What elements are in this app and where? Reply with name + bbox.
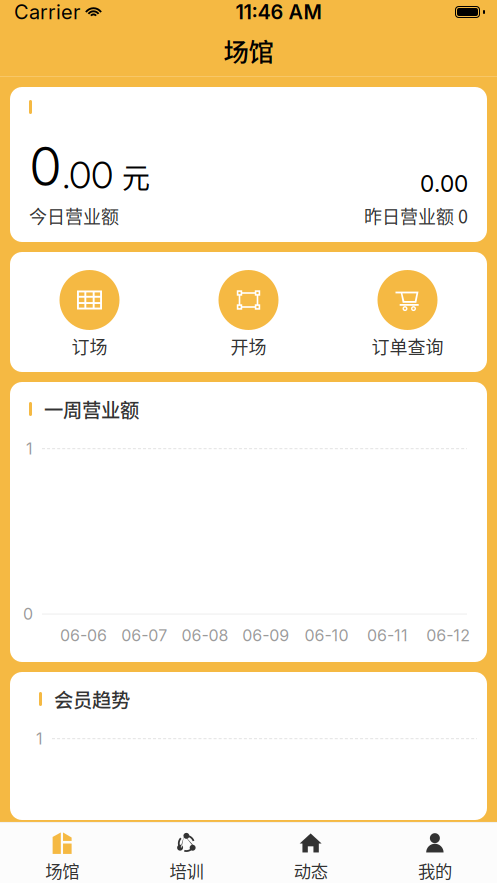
button[interactable]: 培训 (124, 831, 248, 883)
staticText: 动态 (294, 858, 328, 883)
staticText: 06-11 (367, 626, 408, 645)
staticText: 0.00 (420, 170, 468, 197)
staticText: 我的 (418, 858, 452, 883)
button[interactable]: 场馆 (0, 831, 124, 883)
staticText: 1 (36, 729, 43, 748)
button[interactable]: 开场 (169, 270, 328, 359)
staticText: 元 (122, 156, 150, 196)
staticText: 昨日营业额 0 (364, 202, 468, 229)
staticText: .00 (62, 152, 113, 198)
staticText: 1 (26, 439, 33, 458)
staticText: 06-06 (60, 626, 107, 645)
staticText: 06-12 (426, 626, 470, 645)
staticText: 06-07 (121, 626, 167, 645)
button[interactable]: 我的 (373, 831, 497, 883)
button[interactable]: 订单查询 (328, 270, 487, 359)
staticText: 0 (23, 604, 33, 624)
staticText: 06-09 (242, 626, 289, 645)
staticText: 会员趋势 (54, 685, 130, 713)
staticText: 订场 (71, 333, 107, 359)
staticText: 场馆 (223, 32, 273, 69)
staticText: 培训 (169, 858, 203, 883)
staticText: 06-08 (181, 626, 228, 645)
staticText: 开场 (230, 333, 266, 359)
staticText: 今日营业额 (29, 202, 119, 229)
staticText: 0 (29, 134, 62, 198)
staticText: 一周营业额 (44, 395, 139, 423)
button[interactable]: 动态 (248, 831, 373, 883)
staticText: 场馆 (45, 858, 79, 883)
staticText: 11:46 AM (235, 0, 321, 24)
staticText: 订单查询 (371, 333, 443, 359)
staticText: 06-10 (305, 626, 349, 645)
button[interactable]: 订场 (10, 270, 169, 359)
staticText: Carrier (14, 0, 80, 24)
